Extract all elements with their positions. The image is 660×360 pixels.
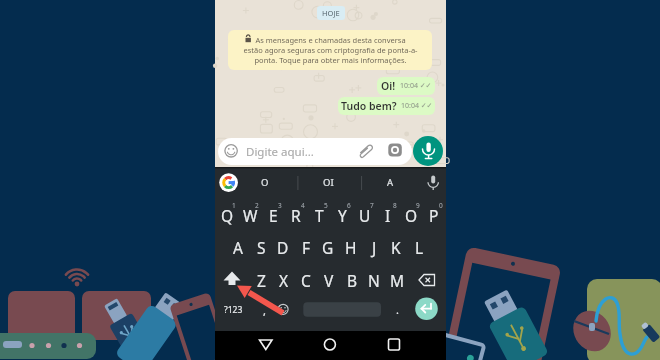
button[interactable]: A bbox=[350, 169, 430, 195]
button[interactable]: R bbox=[285, 200, 307, 230]
staticText: G bbox=[322, 237, 334, 258]
staticText: A bbox=[387, 176, 394, 189]
button[interactable]: B bbox=[341, 265, 363, 295]
button[interactable]: N bbox=[363, 265, 385, 295]
button[interactable]: S bbox=[250, 232, 272, 262]
staticText: H bbox=[345, 237, 357, 258]
staticText: 10:04 ✓✓ bbox=[400, 81, 432, 91]
staticText: C bbox=[301, 270, 311, 291]
staticText: 8 bbox=[393, 201, 397, 210]
staticText: I bbox=[385, 205, 391, 226]
button[interactable]: A bbox=[227, 232, 249, 262]
staticText: S bbox=[257, 237, 266, 258]
staticText: T bbox=[315, 205, 324, 226]
staticText: Q bbox=[221, 205, 234, 226]
button[interactable]: Q bbox=[216, 200, 238, 230]
staticText: B bbox=[347, 270, 358, 291]
staticText: 6 bbox=[347, 201, 351, 210]
staticText: 5 bbox=[324, 201, 328, 210]
staticText: , bbox=[263, 303, 266, 318]
staticText: D bbox=[277, 237, 289, 258]
button[interactable]: O bbox=[225, 169, 305, 195]
staticText: 7 bbox=[370, 201, 374, 210]
staticText: As mensagens e chamadas desta conversa e… bbox=[243, 35, 418, 65]
staticText: 10:04 ✓✓ bbox=[401, 101, 433, 111]
button[interactable]: D bbox=[272, 232, 294, 262]
button[interactable]: , bbox=[224, 297, 304, 323]
button[interactable]: Z bbox=[250, 265, 272, 295]
button[interactable]: P bbox=[423, 200, 445, 230]
staticText: Z bbox=[257, 270, 266, 291]
button[interactable]: Y bbox=[331, 200, 353, 230]
button[interactable]: ?123 bbox=[193, 297, 273, 323]
button[interactable]: K bbox=[385, 232, 407, 262]
staticText: Oi! bbox=[381, 79, 396, 93]
staticText: Digite aqui... bbox=[246, 144, 314, 160]
staticText: R bbox=[291, 205, 301, 226]
staticText: Y bbox=[338, 205, 347, 226]
button[interactable]: W bbox=[239, 200, 261, 230]
button[interactable]: J bbox=[363, 232, 385, 262]
button[interactable]: C bbox=[295, 265, 317, 295]
button[interactable]: OI bbox=[288, 169, 368, 195]
staticText: J bbox=[372, 237, 377, 258]
button[interactable] bbox=[413, 136, 443, 166]
staticText: . bbox=[396, 302, 399, 317]
button[interactable]: X bbox=[273, 265, 295, 295]
staticText: F bbox=[302, 237, 311, 258]
button[interactable]: O bbox=[400, 200, 422, 230]
staticText: M bbox=[390, 270, 405, 291]
button[interactable]: V bbox=[318, 265, 340, 295]
button[interactable]: H bbox=[340, 232, 362, 262]
staticText: E bbox=[269, 205, 278, 226]
staticText: L bbox=[415, 237, 424, 258]
button[interactable]: F bbox=[295, 232, 317, 262]
staticText: P bbox=[429, 205, 439, 226]
staticText: 9 bbox=[416, 201, 420, 210]
staticText: O bbox=[261, 176, 269, 189]
staticText: X bbox=[279, 270, 289, 291]
staticText: 4 bbox=[301, 201, 305, 210]
staticText: HOJE bbox=[322, 8, 340, 18]
staticText: 2 bbox=[255, 201, 259, 210]
button[interactable]: G bbox=[317, 232, 339, 262]
button[interactable]: I bbox=[377, 200, 399, 230]
staticText: A bbox=[233, 237, 243, 258]
staticText: 0 bbox=[439, 201, 443, 210]
button[interactable]: T bbox=[308, 200, 330, 230]
button[interactable]: M bbox=[386, 265, 408, 295]
button[interactable]: E bbox=[262, 200, 284, 230]
staticText: U bbox=[359, 205, 371, 226]
button[interactable]: As mensagens e chamadas desta conversa e… bbox=[228, 30, 432, 70]
staticText: Tudo bem? bbox=[341, 99, 397, 113]
button[interactable] bbox=[218, 138, 412, 165]
button[interactable]: . bbox=[357, 296, 437, 322]
staticText: OI bbox=[323, 176, 334, 189]
button[interactable]: U bbox=[354, 200, 376, 230]
staticText: V bbox=[324, 270, 334, 291]
staticText: O bbox=[405, 205, 418, 226]
staticText: N bbox=[368, 270, 380, 291]
staticText: 1 bbox=[232, 201, 236, 210]
staticText: 3 bbox=[278, 201, 282, 210]
staticText: K bbox=[391, 237, 401, 258]
staticText: ?123 bbox=[224, 304, 243, 316]
staticText: W bbox=[243, 205, 258, 226]
button[interactable]: L bbox=[408, 232, 430, 262]
